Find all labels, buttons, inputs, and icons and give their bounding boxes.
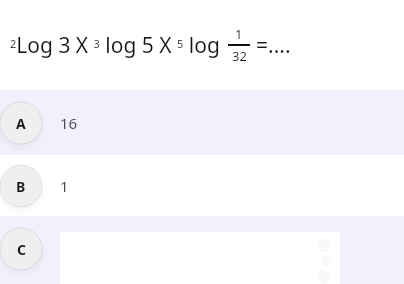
staticText: 2Log 3 X 3 log 5 X 5 log (10, 31, 226, 60)
staticText: 32 (232, 47, 247, 65)
staticText: 1 (60, 176, 69, 196)
staticText: C (17, 240, 26, 259)
staticText: 16 (60, 113, 78, 133)
staticText: B (16, 177, 26, 196)
button[interactable]: A (0, 90, 404, 155)
staticText: =.... (256, 31, 291, 60)
button[interactable]: C (0, 216, 404, 284)
button[interactable]: B (0, 155, 404, 216)
staticText: A (16, 114, 26, 133)
staticText: 1 (235, 25, 243, 43)
